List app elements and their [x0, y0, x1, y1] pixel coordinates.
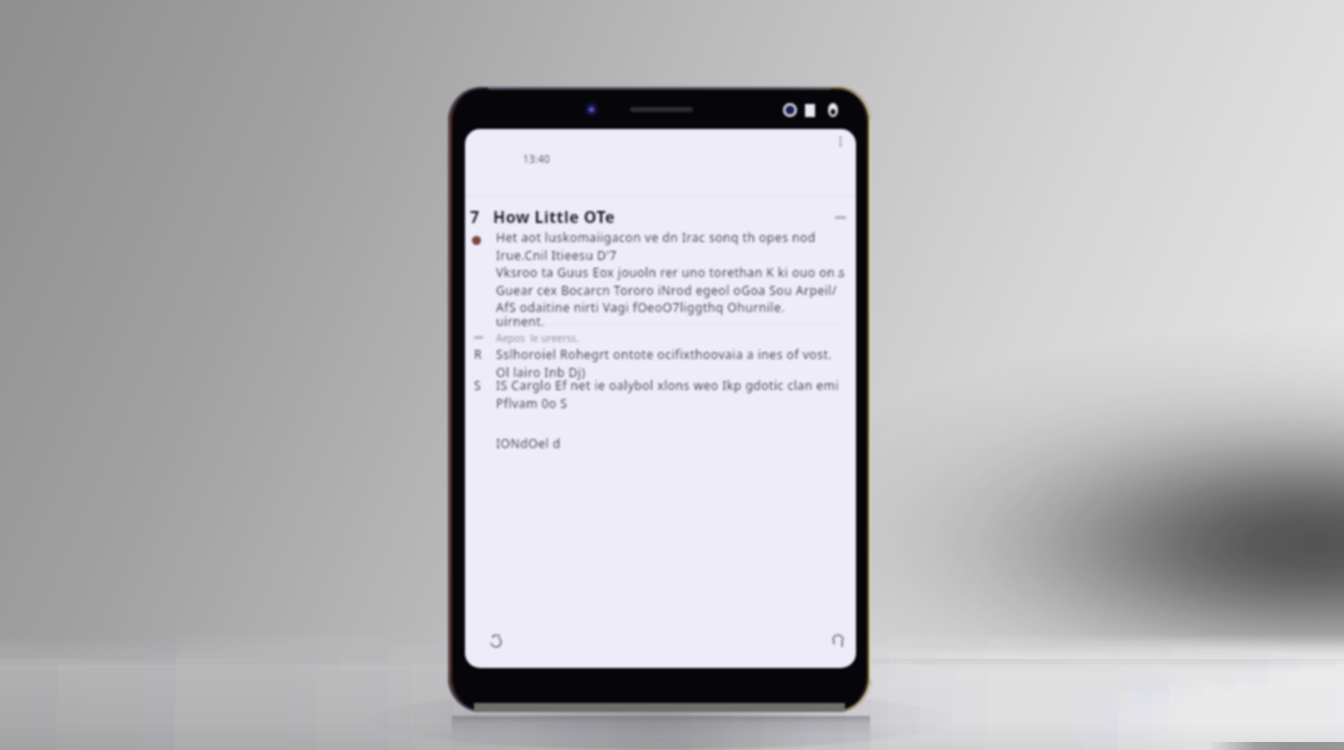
- staticText: S: [474, 377, 481, 394]
- staticText: R: [474, 346, 482, 363]
- staticText: How Little OTe: [493, 206, 616, 228]
- button[interactable]: More options: [828, 129, 852, 153]
- button[interactable]: Undo: [483, 627, 509, 653]
- staticText: IS Carglo Ef net ie oalybol xlons weo Ik…: [496, 377, 839, 411]
- staticText: Aepos le ureerss.: [496, 331, 579, 345]
- button[interactable]: 13:40: [523, 149, 573, 169]
- staticText: Sslhoroiel Rohegrt ontote ocifixthoovaia…: [496, 346, 832, 380]
- staticText: Vksroo ta Guus Eox jouoln rer uno toreth…: [496, 264, 845, 315]
- staticText: IONdOel d: [496, 435, 561, 452]
- staticText: 13:40: [523, 152, 551, 166]
- staticText: uirnent.: [496, 313, 545, 330]
- staticText: Het aot luskomaiigacon ve dn Irac sonq t…: [496, 229, 816, 263]
- button[interactable]: New note: [825, 627, 851, 653]
- button[interactable]: 7: [470, 205, 846, 229]
- staticText: 7: [470, 206, 480, 228]
